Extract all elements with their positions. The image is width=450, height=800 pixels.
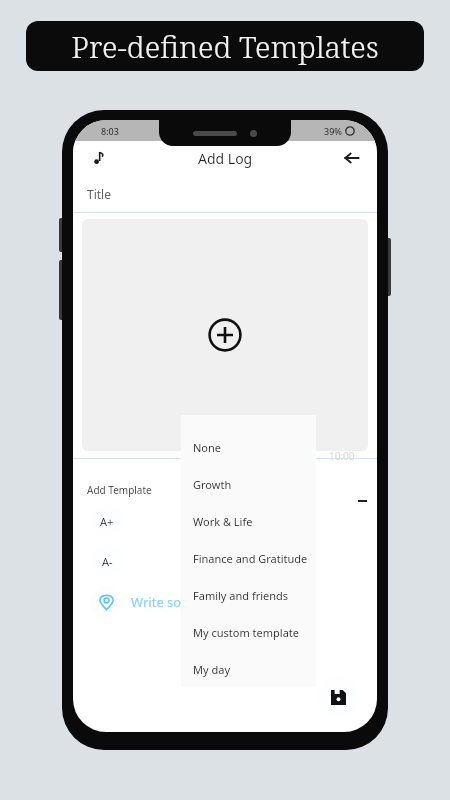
button[interactable]: Family and friends <box>181 577 316 614</box>
staticText: A- <box>102 554 113 569</box>
button[interactable]: Music <box>85 145 111 171</box>
button[interactable]: Save <box>317 676 359 718</box>
staticText: A+ <box>100 514 114 529</box>
staticText: None <box>193 440 222 455</box>
other: Location <box>91 587 121 617</box>
button[interactable]: My custom template <box>181 614 316 651</box>
staticText: 10:00 <box>329 449 355 463</box>
staticText: 8:03 <box>101 125 119 137</box>
staticText: Add Template <box>87 483 152 497</box>
staticText: Write something... <box>131 593 244 611</box>
staticText: Add Log <box>198 149 253 168</box>
staticText: Pre-defined Templates <box>71 26 379 67</box>
staticText: Finance and Gratitude <box>193 551 308 566</box>
staticText: Growth <box>193 477 232 492</box>
button[interactable]: Title <box>73 175 377 213</box>
staticText: My day <box>193 662 230 677</box>
button[interactable]: A+ <box>91 505 123 537</box>
button[interactable]: Location <box>91 587 244 617</box>
button[interactable]: Finance and Gratitude <box>181 540 316 577</box>
button[interactable]: A- <box>91 545 123 577</box>
button[interactable]: Growth <box>181 466 316 503</box>
button[interactable]: My day <box>181 651 316 687</box>
staticText: Title <box>87 186 111 202</box>
button[interactable]: None <box>181 429 316 466</box>
button[interactable]: Back <box>339 145 365 171</box>
button[interactable]: Work & Life <box>181 503 316 540</box>
staticText: 39% <box>324 125 342 137</box>
staticText: My custom template <box>193 625 299 640</box>
button[interactable] <box>82 219 368 451</box>
staticText: Family and friends <box>193 588 289 603</box>
staticText: Work & Life <box>193 514 253 529</box>
button[interactable]: Pre-defined Templates <box>26 21 424 71</box>
